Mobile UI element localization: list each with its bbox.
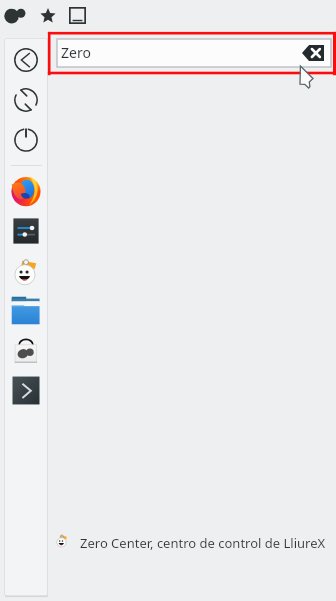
button[interactable]: Favourites — [40, 8, 56, 24]
staticText: Zero — [61, 43, 91, 62]
button[interactable]: System settings — [11, 216, 41, 246]
button[interactable]: Back — [14, 48, 38, 72]
button[interactable]: Firefox — [11, 176, 41, 206]
staticText: Zero Center, centro de control de Lliure… — [80, 534, 326, 552]
button[interactable]: Zero Center store — [4, 8, 26, 24]
button[interactable]: Power — [14, 128, 38, 152]
button[interactable]: Files — [11, 296, 40, 325]
button[interactable]: Reload — [14, 88, 38, 112]
button[interactable]: Zero Center — [11, 256, 41, 286]
button[interactable]: Zero — [57, 39, 331, 67]
button[interactable]: Window — [69, 7, 86, 24]
button[interactable]: Terminal — [11, 375, 41, 406]
button[interactable]: Clear search — [302, 45, 324, 61]
button[interactable]: Software store — [11, 336, 41, 366]
